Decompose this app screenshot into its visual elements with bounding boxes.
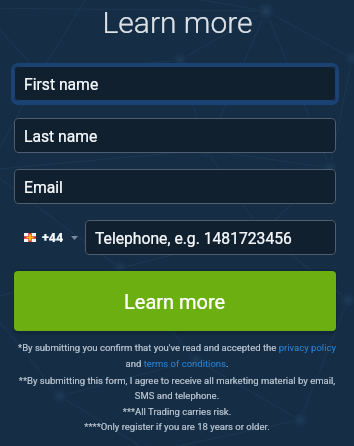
staticText: ****Only register if you are 18 years or… xyxy=(0,421,354,432)
staticText: SMS and telephone. xyxy=(0,390,354,401)
staticText: Learn more xyxy=(124,290,226,313)
button[interactable]: Learn more xyxy=(14,271,336,331)
staticText: Telephone, e.g. 1481723456 xyxy=(95,229,292,247)
button[interactable]: Last name xyxy=(14,118,336,153)
staticText: **By submitting this form, I agree to re… xyxy=(0,375,354,386)
staticText: +44 xyxy=(42,230,64,245)
button[interactable]: Telephone, e.g. 1481723456 xyxy=(85,220,336,255)
staticText: *By submitting you confirm that you've r… xyxy=(0,342,354,353)
button[interactable]: First name xyxy=(14,66,336,101)
staticText: Learn more xyxy=(102,5,253,40)
staticText: Email xyxy=(24,178,63,196)
staticText: ***All Trading carries risk. xyxy=(0,406,354,417)
staticText: Last name xyxy=(24,127,98,145)
staticText: First name xyxy=(24,75,99,93)
button[interactable]: Select country calling code xyxy=(14,220,85,255)
button[interactable]: Email xyxy=(14,169,336,204)
staticText: and terms of conditions. xyxy=(0,358,354,369)
